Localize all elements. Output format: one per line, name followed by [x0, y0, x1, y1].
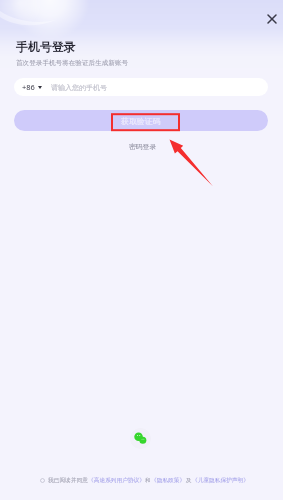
- staticText: 及: [186, 477, 192, 484]
- staticText: 获取验证码: [121, 116, 161, 126]
- button[interactable]: 密码登录: [121, 139, 165, 154]
- button[interactable]: 《高途系列用户协议》: [88, 477, 145, 484]
- staticText: 请输入您的手机号: [51, 83, 107, 92]
- button[interactable]: 《儿童隐私保护声明》: [192, 477, 249, 484]
- staticText: 和: [145, 477, 151, 484]
- staticText: +86: [22, 82, 35, 92]
- staticText: 密码登录: [129, 142, 157, 151]
- button[interactable]: 获取验证码: [14, 110, 268, 131]
- button[interactable]: WeChat login: [130, 428, 151, 449]
- button[interactable]: +86: [14, 78, 268, 96]
- staticText: 我已阅读并同意: [48, 477, 88, 484]
- staticText: 手机号登录: [16, 40, 76, 55]
- button[interactable]: Agree to terms: [40, 478, 45, 483]
- button[interactable]: Close: [261, 8, 283, 30]
- button[interactable]: 《隐私政策》: [151, 477, 186, 484]
- staticText: 首次登录手机号将在验证后生成新账号: [16, 59, 129, 67]
